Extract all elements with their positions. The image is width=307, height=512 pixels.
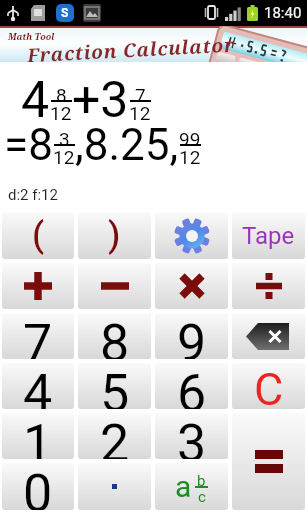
button[interactable] <box>232 313 305 359</box>
staticText: 4 <box>21 71 50 130</box>
staticText: 18:40 <box>264 4 302 22</box>
staticText: 12 <box>179 146 201 162</box>
staticText: a <box>175 469 192 504</box>
staticText: ( <box>32 215 45 256</box>
button[interactable]: 9 <box>155 313 228 359</box>
button[interactable]: ) <box>78 212 151 259</box>
button[interactable]: 8 <box>78 313 151 359</box>
staticText: 8 <box>56 84 67 100</box>
button[interactable] <box>155 212 228 259</box>
staticText: Math Tool <box>8 30 55 42</box>
button[interactable] <box>232 263 305 309</box>
staticText: c <box>198 488 206 502</box>
staticText: 1 <box>23 413 53 459</box>
staticText: C <box>254 363 284 409</box>
button[interactable]: Tape <box>232 212 305 259</box>
staticText: Fraction Calculator <box>26 31 236 62</box>
staticText: Tape <box>242 222 295 250</box>
button[interactable] <box>232 413 305 510</box>
staticText: b <box>197 472 206 486</box>
button[interactable]: 2 <box>78 413 151 459</box>
staticText: 5 <box>100 363 130 409</box>
button[interactable]: 6 <box>155 363 228 409</box>
button[interactable] <box>155 263 228 309</box>
staticText: 12 <box>129 102 151 118</box>
staticText: 2 <box>100 413 130 459</box>
staticText: ) <box>108 215 121 256</box>
staticText: 7 <box>23 313 53 359</box>
staticText: 3 <box>59 128 70 144</box>
staticText: 3 <box>177 413 207 459</box>
staticText: =8 <box>4 119 53 171</box>
button[interactable]: 3 <box>155 413 228 459</box>
staticText: 6 <box>177 363 207 409</box>
button[interactable] <box>2 263 74 309</box>
button[interactable]: 1 <box>2 413 74 459</box>
staticText: 9 <box>177 313 207 359</box>
staticText: d:2 f:12 <box>8 186 58 204</box>
staticText: S <box>61 6 69 20</box>
button[interactable]: a <box>155 463 228 510</box>
staticText: +3 <box>72 71 129 130</box>
button[interactable]: C <box>232 363 305 409</box>
staticText: 8 <box>100 313 130 359</box>
staticText: 99 <box>179 128 201 144</box>
button[interactable] <box>78 463 151 510</box>
button[interactable] <box>78 263 151 309</box>
button[interactable]: 7 <box>2 313 74 359</box>
staticText: 12 <box>50 102 72 118</box>
staticText: 12 <box>53 146 75 162</box>
staticText: 0 <box>23 463 53 510</box>
staticText: 7 <box>135 84 146 100</box>
button[interactable]: 0 <box>2 463 74 510</box>
button[interactable]: 5 <box>78 363 151 409</box>
staticText: ,8.25, <box>75 119 179 171</box>
button[interactable]: ( <box>2 212 74 259</box>
button[interactable]: 4 <box>2 363 74 409</box>
staticText: 4 <box>23 363 53 409</box>
